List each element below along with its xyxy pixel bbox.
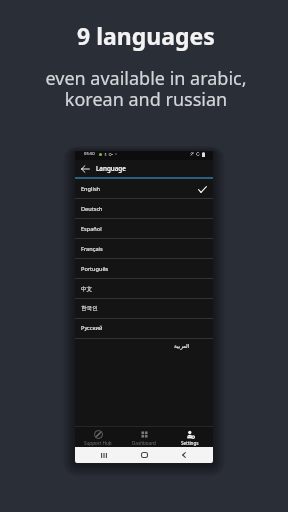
staticText: Language [96,164,126,173]
staticText: Settings [181,440,199,446]
button[interactable]: 中文 [75,279,213,299]
button[interactable]: English [75,179,213,199]
staticText: 05:50 [84,151,95,157]
button[interactable]: Recents [98,450,110,460]
button[interactable]: Deutsch [75,199,213,219]
staticText: العربية [174,343,190,350]
button[interactable]: Русский [75,318,213,338]
button[interactable]: Português [75,259,213,279]
button[interactable]: Back [80,164,90,174]
staticText: Português [81,265,109,273]
button[interactable]: Home [138,450,150,460]
staticText: 中文 [81,286,93,293]
staticText: 한국인 [81,305,98,312]
button[interactable]: Settings [167,427,213,447]
staticText: Русский [81,324,103,332]
button[interactable]: Español [75,219,213,239]
staticText: Français [81,245,103,253]
button[interactable]: Français [75,239,213,259]
staticText: even available in arabic, korean and rus… [45,66,247,111]
button[interactable]: العربية [75,338,213,358]
button[interactable]: Support Hub [75,427,121,447]
staticText: 9 languages [77,20,215,51]
staticText: Deutsch [81,205,103,213]
staticText: Español [81,225,102,233]
button[interactable]: Dashboard [121,427,167,447]
staticText: Support Hub [84,440,112,446]
staticText: Dashboard [132,440,156,446]
staticText: English [81,185,101,193]
button[interactable]: 한국인 [75,298,213,318]
button[interactable]: Back [178,450,190,460]
